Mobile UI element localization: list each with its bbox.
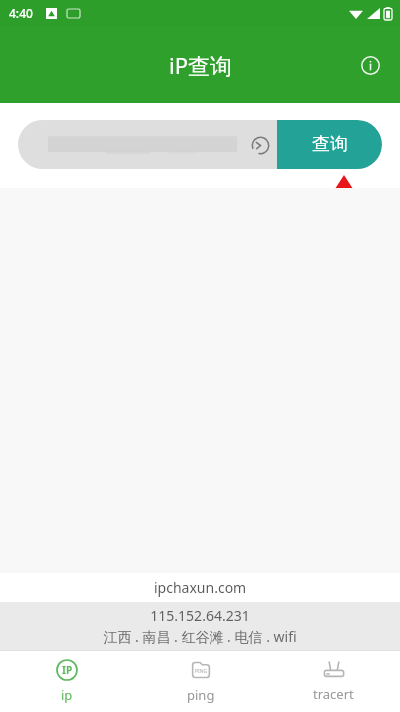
staticText: ipchaxun.com — [154, 578, 247, 597]
button[interactable]: tracert — [267, 651, 400, 712]
button[interactable]: About — [350, 45, 390, 85]
button[interactable]: ipchaxun.com — [0, 573, 400, 602]
staticText: tracert — [313, 685, 354, 703]
staticText: PING — [195, 668, 208, 675]
button[interactable]: History — [243, 128, 277, 162]
button[interactable]: IP — [0, 651, 134, 712]
staticText: iP查询 — [169, 50, 232, 80]
staticText: 4:40 — [9, 5, 33, 21]
staticText: 115.152.64.231 — [150, 606, 250, 625]
button[interactable]: 查询 — [277, 120, 382, 169]
button[interactable]: PING — [134, 651, 267, 712]
button[interactable]: 115.152.64.231 — [0, 602, 400, 650]
staticText: 江西 . 南昌 . 红谷滩 . 电信 . wifi — [103, 627, 297, 646]
staticText: 查询 — [312, 133, 348, 156]
button[interactable]: History — [18, 120, 277, 169]
staticText: ping — [187, 686, 215, 704]
staticText: IP — [62, 663, 73, 677]
staticText: ip — [61, 686, 73, 704]
